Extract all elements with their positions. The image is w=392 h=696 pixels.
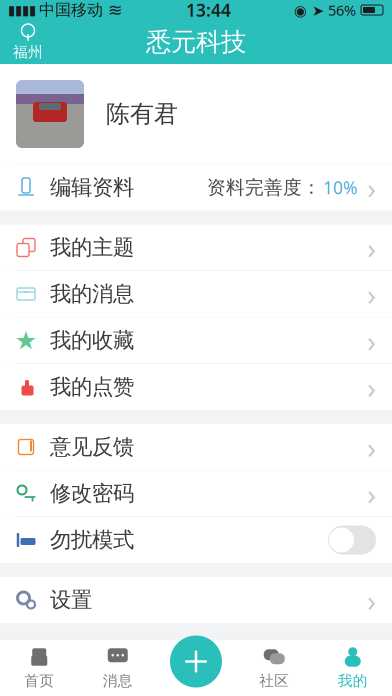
button[interactable]: 我的点赞: [0, 364, 392, 410]
staticText: 我的: [338, 672, 368, 690]
button[interactable]: 编辑资料: [0, 164, 392, 210]
staticText: 中国移动: [39, 0, 103, 20]
staticText: 13:44: [186, 0, 231, 21]
staticText: ›: [367, 580, 376, 619]
button[interactable]: 我的消息: [0, 271, 392, 317]
staticText: 消息: [103, 672, 133, 690]
staticText: 资料完善度：: [207, 176, 321, 199]
staticText: 我的点赞: [50, 374, 134, 400]
staticText: ›: [367, 168, 376, 207]
button[interactable]: 修改密码: [0, 470, 392, 517]
button[interactable]: 社区: [235, 640, 313, 696]
button[interactable]: 陈有君: [0, 64, 392, 164]
staticText: ›: [367, 274, 376, 313]
button[interactable]: 首页: [0, 640, 78, 696]
staticText: 我的主题: [50, 234, 134, 261]
button[interactable]: 设置: [0, 577, 392, 623]
staticText: 修改密码: [50, 480, 134, 507]
staticText: ›: [367, 228, 376, 267]
button[interactable]: 消息: [78, 640, 157, 696]
staticText: 编辑资料: [50, 174, 134, 201]
staticText: ▮▮▮▮: [8, 2, 36, 17]
staticText: 陈有君: [106, 99, 178, 129]
button[interactable]: Location: 福州: [0, 20, 56, 64]
staticText: 我的收藏: [50, 327, 134, 354]
staticText: 设置: [50, 587, 92, 613]
staticText: 我的消息: [50, 281, 134, 307]
staticText: ›: [367, 427, 376, 466]
button[interactable]: Add: [170, 635, 222, 687]
staticText: ◉ ➤ 56%: [294, 0, 356, 20]
staticText: ›: [367, 321, 376, 360]
button[interactable]: 勿扰模式: [0, 517, 392, 563]
button[interactable]: 意见反馈: [0, 424, 392, 470]
staticText: ›: [367, 474, 376, 513]
button[interactable]: ★: [0, 317, 392, 364]
button[interactable]: 我的主题: [0, 224, 392, 271]
staticText: 勿扰模式: [50, 527, 134, 553]
staticText: 意见反馈: [50, 434, 134, 460]
staticText: ›: [367, 367, 376, 406]
staticText: 福州: [13, 43, 43, 61]
staticText: 悉元科技: [146, 26, 246, 57]
staticText: 社区: [259, 672, 289, 690]
staticText: 首页: [24, 672, 54, 690]
staticText: ≋: [108, 0, 123, 20]
staticText: ★: [14, 326, 37, 355]
button[interactable]: 我的: [313, 640, 392, 696]
staticText: 10%: [323, 176, 357, 199]
